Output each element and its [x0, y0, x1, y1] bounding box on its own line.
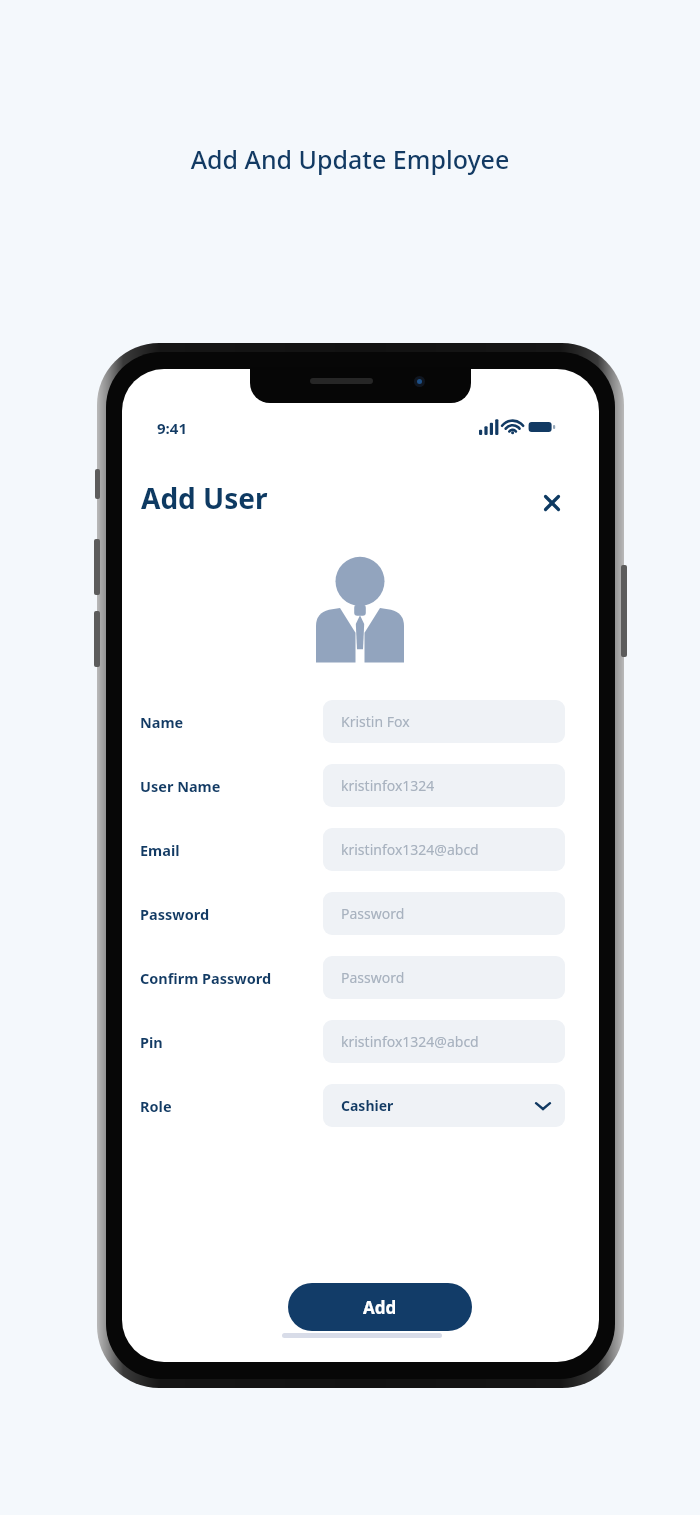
staticText: Name [140, 712, 184, 732]
staticText: kristinfox1324@abcd [341, 1032, 551, 1051]
button[interactable]: Add [288, 1283, 472, 1331]
staticText: Add [363, 1296, 397, 1319]
staticText: Add And Update Employee [0, 142, 700, 176]
button[interactable]: Password [323, 892, 565, 935]
staticText: Password [341, 904, 551, 923]
staticText: Password [341, 968, 551, 987]
staticText: kristinfox1324 [341, 776, 551, 795]
staticText: Email [140, 840, 180, 860]
button[interactable]: Password [323, 956, 565, 999]
staticText: Kristin Fox [341, 712, 551, 731]
button[interactable]: Cashier [323, 1084, 565, 1127]
staticText: Role [140, 1096, 172, 1116]
button[interactable]: Kristin Fox [323, 700, 565, 743]
staticText: Pin [140, 1032, 163, 1052]
staticText: User Name [140, 776, 221, 796]
button[interactable]: kristinfox1324@abcd [323, 1020, 565, 1063]
staticText: Confirm Password [140, 968, 272, 988]
staticText: kristinfox1324@abcd [341, 840, 551, 859]
staticText: 9:41 [157, 418, 187, 438]
button[interactable]: kristinfox1324 [323, 764, 565, 807]
staticText: Add User [141, 479, 268, 517]
button[interactable]: kristinfox1324@abcd [323, 828, 565, 871]
button[interactable]: Close [530, 481, 574, 525]
staticText: Password [140, 904, 210, 924]
staticText: Cashier [341, 1096, 535, 1115]
